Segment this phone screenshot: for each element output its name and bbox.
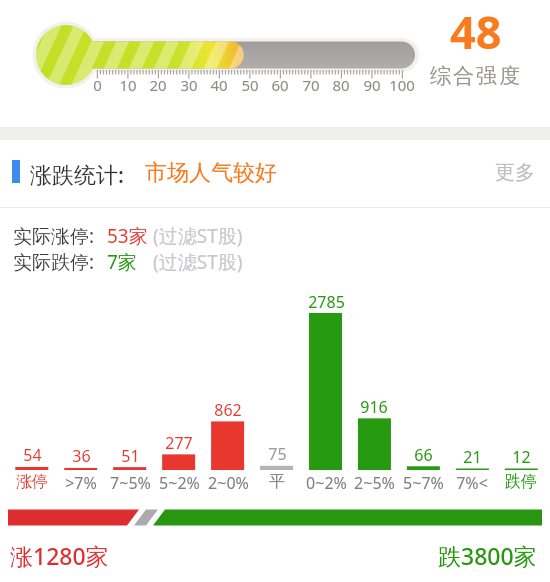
staticText: 60 <box>271 75 289 95</box>
staticText: 2785 <box>308 291 345 313</box>
staticText: 12 <box>512 446 531 468</box>
staticText: 277 <box>165 432 193 454</box>
staticText: 48 <box>450 1 502 62</box>
staticText: 市场人气较好 <box>145 159 277 187</box>
staticText: 7%< <box>456 472 488 494</box>
staticText: 90 <box>363 75 381 95</box>
staticText: 7~5% <box>110 472 151 494</box>
staticText: 36 <box>72 445 91 467</box>
staticText: 50 <box>241 75 259 95</box>
staticText: 更多 <box>495 160 535 185</box>
staticText: 100 <box>389 75 415 95</box>
button[interactable] <box>0 155 550 195</box>
staticText: 综合强度 <box>429 63 521 89</box>
staticText: 54 <box>23 444 42 466</box>
staticText: 涨停 <box>16 472 48 492</box>
staticText: 跌3800家 <box>438 540 537 571</box>
staticText: 53家 <box>107 223 148 249</box>
staticText: (过滤ST股) <box>153 223 243 249</box>
staticText: 40 <box>210 75 228 95</box>
staticText: 5~2% <box>159 472 200 494</box>
staticText: 66 <box>414 444 433 466</box>
staticText: 862 <box>214 399 242 421</box>
staticText: 80 <box>332 75 350 95</box>
staticText: 20 <box>149 75 167 95</box>
staticText: 实际跌停: <box>13 249 95 275</box>
button[interactable]: 更多 <box>487 156 542 188</box>
staticText: 75 <box>268 443 287 465</box>
staticText: 7家 <box>107 249 137 275</box>
staticText: 21 <box>463 446 482 468</box>
staticText: 平 <box>269 472 285 492</box>
staticText: 2~0% <box>208 472 249 494</box>
staticText: 30 <box>180 75 198 95</box>
staticText: 涨1280家 <box>10 540 109 571</box>
staticText: 51 <box>121 445 140 467</box>
staticText: 5~7% <box>403 472 444 494</box>
staticText: 916 <box>360 396 388 418</box>
staticText: 实际涨停: <box>13 223 95 249</box>
staticText: (过滤ST股) <box>153 249 243 275</box>
staticText: 2~5% <box>354 472 395 494</box>
staticText: 0~2% <box>306 472 347 494</box>
staticText: 10 <box>119 75 137 95</box>
staticText: >7% <box>65 472 97 494</box>
staticText: 70 <box>302 75 320 95</box>
staticText: 0 <box>93 75 102 95</box>
staticText: 涨跌统计: <box>30 159 124 189</box>
staticText: 跌停 <box>505 472 537 492</box>
